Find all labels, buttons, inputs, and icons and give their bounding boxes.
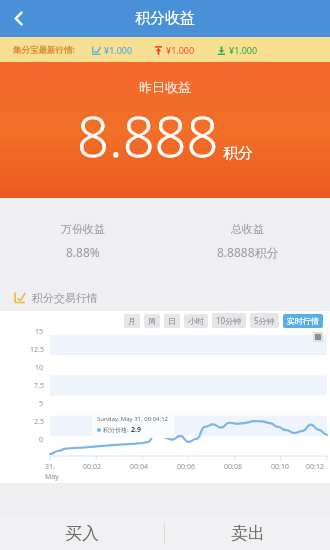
button[interactable]: 小时 [184, 314, 208, 328]
button[interactable]: ¥1.000 [217, 44, 258, 56]
staticText: Sunday, May 31, 00:04:12 [97, 415, 169, 423]
staticText: 日 [168, 316, 176, 326]
staticText: 15 [35, 327, 44, 337]
button[interactable]: 买入 [0, 517, 164, 550]
staticText: 实时行情 [287, 316, 319, 326]
staticText: 周 [148, 316, 156, 326]
button[interactable]: 总收益 [165, 222, 330, 260]
button[interactable]: 月 [124, 314, 140, 328]
staticText: 2.9 [131, 425, 141, 435]
staticText: 昨日收益 [139, 79, 191, 95]
staticText: 8.88% [66, 244, 100, 260]
staticText: ¥1.000 [166, 44, 195, 56]
button[interactable]: 日 [164, 314, 180, 328]
staticText: 00:06 [177, 462, 195, 472]
button[interactable]: 10分钟 [212, 313, 246, 328]
staticText: 积分 [223, 144, 253, 163]
staticText: 积分收益 [135, 9, 195, 28]
staticText: 00:08 [224, 462, 242, 472]
staticText: 集分宝最新行情: [13, 44, 75, 56]
staticText: 7.5 [34, 381, 44, 391]
staticText: 2.5 [34, 417, 44, 427]
staticText: 5 [39, 399, 44, 409]
staticText: 月 [128, 316, 136, 326]
button[interactable]: ¥1.000 [92, 44, 133, 56]
button[interactable]: 周 [144, 314, 160, 328]
button[interactable]: ¥1.000 [154, 44, 195, 56]
staticText: 5分钟 [254, 315, 275, 326]
button[interactable]: 5分钟 [250, 313, 279, 328]
staticText: ¥1.000 [229, 44, 258, 56]
staticText: 买入 [65, 523, 99, 544]
staticText: 0 [39, 435, 44, 445]
button[interactable]: Chart menu [311, 330, 324, 343]
staticText: 8.8888积分 [217, 244, 279, 260]
staticText: 总收益 [231, 222, 264, 236]
button[interactable]: 万份收益 [0, 222, 165, 260]
staticText: 31. May [45, 462, 68, 482]
staticText: 00:10 [271, 462, 289, 472]
staticText: 积分价格: [103, 426, 131, 434]
staticText: ¥1.000 [104, 44, 133, 56]
staticText: 卖出 [231, 523, 265, 544]
staticText: 00:02 [83, 462, 101, 472]
staticText: 00:04 [130, 462, 148, 472]
staticText: 8.888 [77, 97, 219, 173]
staticText: 积分交易行情 [32, 291, 98, 305]
button[interactable]: Back [0, 0, 37, 37]
staticText: 小时 [188, 316, 204, 326]
staticText: 10 [35, 363, 44, 373]
staticText: 万份收益 [61, 222, 105, 236]
button[interactable]: 卖出 [165, 517, 330, 550]
staticText: 00:12 [306, 462, 324, 472]
staticText: 12.5 [30, 345, 44, 355]
staticText: 10分钟 [216, 315, 242, 326]
button[interactable]: 实时行情 [283, 314, 323, 328]
